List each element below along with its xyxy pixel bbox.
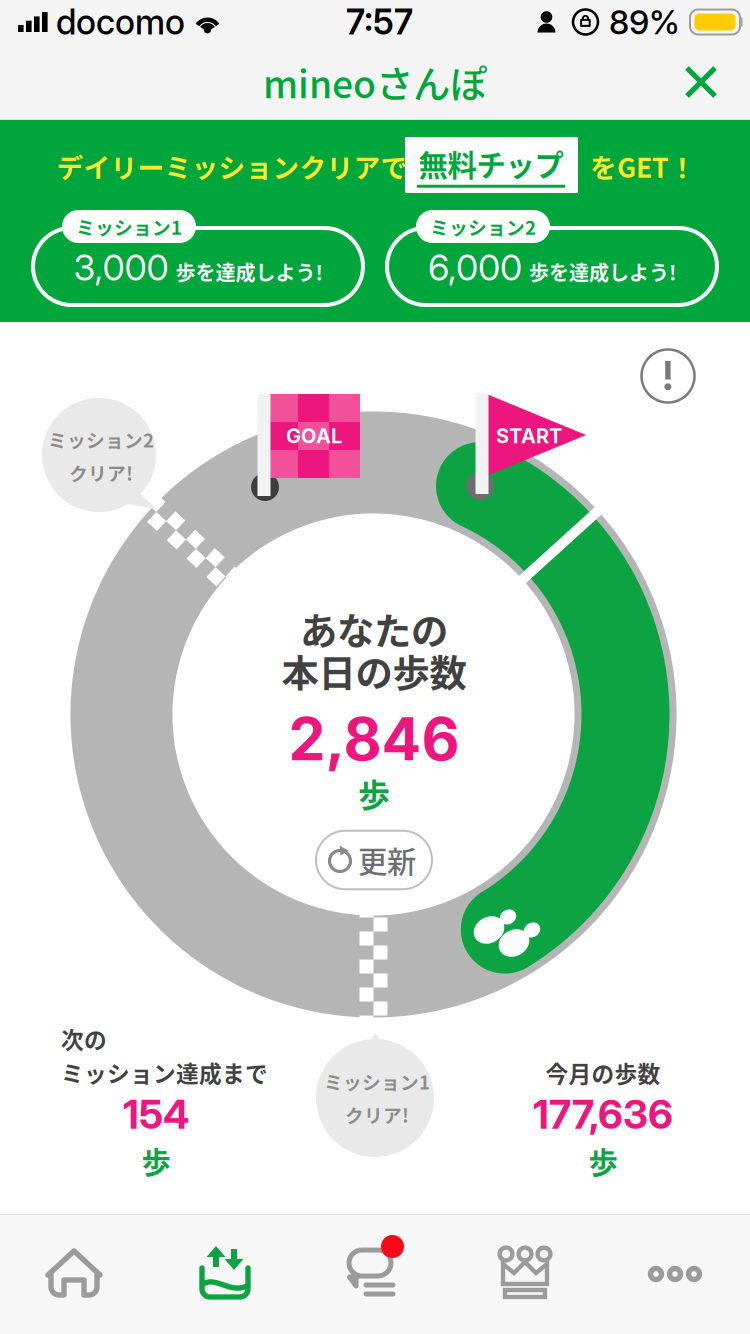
staticText: 2,846: [288, 703, 459, 774]
staticText: 歩を達成しよう!: [529, 257, 676, 286]
button[interactable]: ホーム: [0, 1214, 150, 1334]
button[interactable]: 歩数: [150, 1214, 300, 1334]
button[interactable]: お知らせ: [300, 1214, 450, 1334]
button[interactable]: 閉じる: [663, 44, 750, 120]
staticText: ミッション2: [48, 426, 154, 453]
staticText: GOAL: [286, 424, 342, 448]
staticText: 7:57: [346, 1, 413, 43]
staticText: をGET！: [590, 147, 696, 185]
button[interactable]: ランキング: [450, 1214, 600, 1334]
staticText: 今月の歩数: [545, 1056, 660, 1089]
button[interactable]: 更新: [316, 831, 432, 889]
staticText: 歩を達成しよう!: [175, 257, 322, 286]
staticText: あなたの: [300, 602, 448, 656]
staticText: 次の: [61, 1022, 107, 1055]
button[interactable]: インフォメーション: [635, 343, 701, 409]
staticText: クリア!: [69, 459, 133, 486]
staticText: 歩: [588, 1139, 617, 1182]
staticText: 89%: [609, 2, 680, 42]
staticText: docomo: [56, 1, 185, 43]
staticText: START: [496, 424, 562, 448]
staticText: クリア!: [345, 1101, 409, 1128]
staticText: ミッション2: [430, 213, 536, 240]
staticText: 歩: [141, 1139, 170, 1182]
button[interactable]: その他: [600, 1214, 750, 1334]
staticText: 歩: [358, 770, 390, 816]
staticText: 3,000: [73, 246, 168, 289]
staticText: mineoさんぽ: [263, 55, 487, 109]
staticText: デイリーミッションクリアで: [56, 147, 407, 185]
staticText: 177,636: [533, 1090, 673, 1138]
staticText: 本日の歩数: [281, 644, 466, 698]
staticText: 更新: [358, 839, 416, 881]
staticText: ミッション達成まで: [61, 1056, 268, 1089]
staticText: ミッション1: [76, 213, 182, 240]
staticText: 154: [123, 1090, 189, 1138]
staticText: 無料チップ: [418, 142, 563, 185]
staticText: 6,000: [428, 246, 522, 289]
staticText: ミッション1: [324, 1068, 430, 1095]
